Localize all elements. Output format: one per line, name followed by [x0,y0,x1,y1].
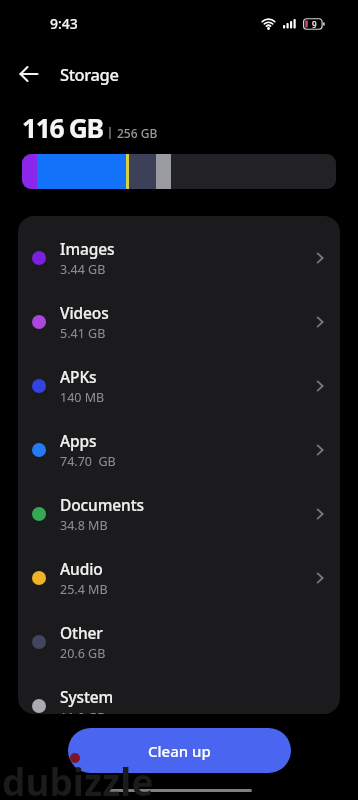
staticText: dubizzle [2,756,154,800]
staticText: 116 GB [22,110,103,146]
button[interactable]: Videos [18,290,340,354]
staticText: Images [60,238,115,259]
staticText: 74.70 GB [60,453,116,470]
staticText: 140 MB [60,389,105,406]
staticText: 20.6 GB [60,645,106,662]
staticText: 3.44 GB [60,261,106,278]
staticText: 5.41 GB [60,325,106,342]
staticText: Storage [60,63,119,85]
staticText: 25.4 MB [60,581,108,598]
staticText: System [60,686,114,707]
button[interactable]: Images [18,226,340,290]
staticText: 11.0 GB [60,709,106,714]
staticText: Documents [60,494,144,515]
staticText: Clean up [148,741,211,761]
button[interactable] [20,56,56,92]
button[interactable]: System [18,674,340,714]
button[interactable]: Documents [18,482,340,546]
staticText: Other [60,622,103,643]
button[interactable]: Audio [18,546,340,610]
staticText: 256 GB [117,125,158,141]
staticText: APKs [60,366,97,387]
button[interactable]: Clean up [68,728,291,773]
staticText: 9 [312,19,317,30]
staticText: 9:43 [50,14,78,33]
staticText: Audio [60,558,103,579]
staticText: 34.8 MB [60,517,108,534]
button[interactable]: Other [18,610,340,674]
staticText: Videos [60,302,109,323]
button[interactable]: Apps [18,418,340,482]
staticText: Apps [60,430,97,451]
button[interactable]: APKs [18,354,340,418]
